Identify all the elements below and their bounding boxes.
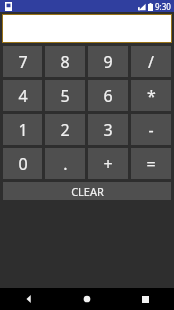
staticText: *: [147, 85, 156, 107]
staticText: 4: [18, 85, 28, 107]
button[interactable]: 9: [88, 46, 128, 77]
button[interactable]: 3: [88, 114, 128, 145]
staticText: 5: [60, 85, 70, 107]
staticText: 3: [103, 119, 113, 141]
staticText: -: [148, 119, 154, 141]
button[interactable]: Home: [58, 288, 116, 310]
button[interactable]: 5: [45, 80, 85, 111]
button[interactable]: 8: [45, 46, 85, 77]
button[interactable]: CLEAR: [3, 182, 171, 200]
button[interactable]: Back: [0, 288, 58, 310]
button[interactable]: 4: [3, 80, 42, 111]
button[interactable]: 1: [3, 114, 42, 145]
staticText: 2: [60, 119, 70, 141]
staticText: 9: [103, 51, 113, 73]
staticText: CLEAR: [71, 184, 104, 199]
staticText: 7: [18, 51, 28, 73]
staticText: 0: [18, 153, 28, 175]
staticText: +: [103, 153, 113, 175]
button[interactable]: 0: [3, 148, 42, 179]
staticText: 6: [103, 85, 113, 107]
button[interactable]: =: [131, 148, 171, 179]
button[interactable]: 2: [45, 114, 85, 145]
button[interactable]: Recent apps: [116, 288, 174, 310]
staticText: 1: [18, 119, 28, 141]
staticText: 8: [60, 51, 70, 73]
button[interactable]: /: [131, 46, 171, 77]
button[interactable]: 6: [88, 80, 128, 111]
button[interactable]: -: [131, 114, 171, 145]
button[interactable]: *: [131, 80, 171, 111]
staticText: .: [63, 153, 68, 175]
staticText: =: [146, 153, 156, 175]
button[interactable]: .: [45, 148, 85, 179]
button[interactable]: +: [88, 148, 128, 179]
button[interactable]: 7: [3, 46, 42, 77]
staticText: 9:30: [155, 1, 171, 12]
staticText: /: [148, 51, 154, 73]
